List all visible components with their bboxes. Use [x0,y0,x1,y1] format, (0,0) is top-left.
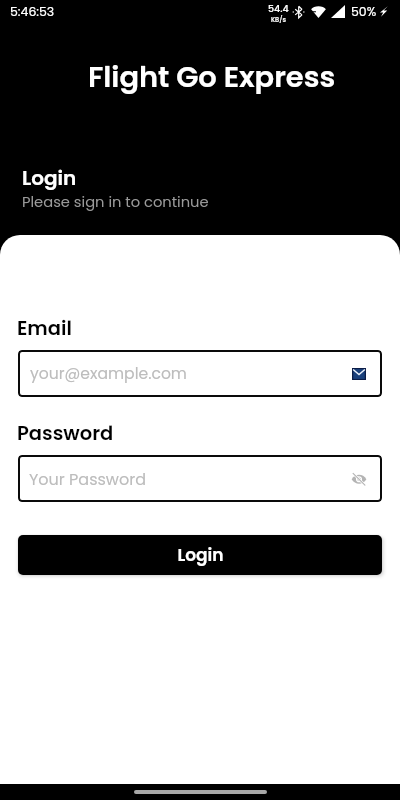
button[interactable]: Show password [347,467,371,491]
button[interactable]: Email [347,362,371,386]
staticText: Please sign in to continue [22,192,209,213]
button[interactable]: Your Password [18,455,382,502]
staticText: 54.4 [268,2,289,15]
staticText: Login [177,543,224,567]
staticText: Your Password [29,468,146,490]
staticText: your@example.com [30,363,187,385]
button[interactable]: your@example.com [18,350,382,397]
staticText: Flight Go Express [88,57,336,95]
staticText: 50% [351,3,377,20]
staticText: Password [17,420,114,447]
staticText: Email [17,315,72,342]
staticText: KB/s [271,15,287,24]
staticText: 5:46:53 [10,3,55,20]
button[interactable]: Login [18,535,382,575]
staticText: Login [22,164,77,192]
